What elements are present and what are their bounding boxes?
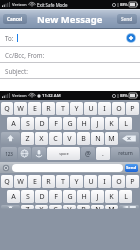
- button[interactable]: Add contact: [126, 33, 136, 43]
- button[interactable]: Q: [1, 102, 13, 115]
- staticText: D: [39, 119, 45, 129]
- button[interactable]: L: [119, 117, 132, 130]
- staticText: O: [116, 177, 122, 187]
- staticText: C: [53, 205, 58, 209]
- button[interactable]: G: [63, 190, 76, 203]
- staticText: Cancel: [7, 16, 23, 22]
- button[interactable]: Subject:: [0, 63, 140, 79]
- staticText: 88%: [120, 2, 128, 7]
- button[interactable]: Camera: [2, 164, 10, 172]
- staticText: X: [39, 134, 44, 144]
- button[interactable]: E: [28, 175, 41, 188]
- button[interactable]: P: [126, 102, 139, 115]
- button[interactable]: To:: [0, 29, 140, 47]
- staticText: V: [67, 134, 72, 144]
- button[interactable]: R: [42, 102, 55, 115]
- staticText: O: [116, 104, 122, 114]
- staticText: Verizon: [12, 2, 27, 8]
- button[interactable]: V: [63, 132, 76, 145]
- button[interactable]: Dictate: [32, 147, 46, 160]
- button[interactable]: M: [105, 132, 118, 145]
- staticText: Z: [25, 134, 30, 144]
- button[interactable]: Z: [21, 132, 34, 145]
- button[interactable]: T: [56, 102, 69, 115]
- button[interactable]: U: [84, 102, 97, 115]
- staticText: Y: [74, 104, 79, 114]
- button[interactable]: J: [91, 190, 104, 203]
- button[interactable]: N: [91, 132, 104, 145]
- button[interactable]: Send: [117, 14, 137, 24]
- button[interactable]: D: [35, 190, 48, 203]
- button[interactable]: G: [63, 117, 76, 130]
- button[interactable]: H: [77, 117, 90, 130]
- staticText: Verizon: [12, 93, 27, 99]
- staticText: M: [108, 205, 115, 209]
- button[interactable]: 123: [1, 147, 17, 160]
- button[interactable]: Z: [21, 205, 34, 209]
- button[interactable]: Cancel: [3, 14, 27, 24]
- button[interactable]: S: [21, 190, 34, 203]
- button[interactable]: Shift: [1, 132, 20, 145]
- staticText: B: [81, 205, 86, 209]
- button[interactable]: H: [77, 190, 90, 203]
- staticText: F: [54, 119, 58, 129]
- button[interactable]: C: [49, 132, 62, 145]
- button[interactable]: F: [49, 190, 62, 203]
- button[interactable]: I: [98, 102, 111, 115]
- button[interactable]: Send: [125, 164, 138, 172]
- button[interactable]: A: [7, 190, 20, 203]
- button[interactable]: Backspace: [119, 132, 139, 145]
- staticText: X: [39, 205, 44, 209]
- staticText: Cc/Bcc, From:: [5, 51, 45, 59]
- staticText: Send: [126, 165, 137, 171]
- button[interactable]: K: [105, 190, 118, 203]
- staticText: space: [59, 151, 69, 156]
- button[interactable]: J: [91, 117, 104, 130]
- button[interactable]: X: [35, 132, 48, 145]
- button[interactable]: V: [63, 205, 76, 209]
- button[interactable]: return: [111, 147, 139, 160]
- button[interactable]: I: [98, 175, 111, 188]
- button[interactable]: .: [96, 147, 110, 160]
- staticText: Y: [74, 177, 79, 187]
- staticText: Q: [4, 104, 10, 114]
- button[interactable]: C: [49, 205, 62, 209]
- button[interactable]: Globe: [18, 147, 31, 160]
- button[interactable]: B: [77, 132, 90, 145]
- button[interactable]: D: [35, 117, 48, 130]
- staticText: return: [118, 150, 133, 157]
- button[interactable]: Shift: [1, 205, 20, 209]
- button[interactable]: K: [105, 117, 118, 130]
- button[interactable]: Y: [70, 102, 83, 115]
- staticText: 123: [5, 151, 13, 157]
- button[interactable]: Q: [1, 175, 13, 188]
- button[interactable]: P: [126, 175, 139, 188]
- button[interactable]: W: [14, 175, 27, 188]
- button[interactable]: [12, 164, 123, 172]
- button[interactable]: L: [119, 190, 132, 203]
- button[interactable]: space: [47, 147, 80, 160]
- button[interactable]: S: [21, 117, 34, 130]
- button[interactable]: @: [81, 147, 95, 160]
- button[interactable]: W: [14, 102, 27, 115]
- button[interactable]: O: [112, 175, 125, 188]
- button[interactable]: Y: [70, 175, 83, 188]
- staticText: W: [17, 104, 24, 114]
- button[interactable]: B: [77, 205, 90, 209]
- button[interactable]: X: [35, 205, 48, 209]
- staticText: C: [53, 134, 58, 144]
- button[interactable]: U: [84, 175, 97, 188]
- staticText: 88%: [120, 93, 128, 98]
- button[interactable]: E: [28, 102, 41, 115]
- staticText: S: [26, 119, 30, 129]
- staticText: I: [103, 177, 106, 187]
- button[interactable]: M: [105, 205, 118, 209]
- button[interactable]: F: [49, 117, 62, 130]
- button[interactable]: R: [42, 175, 55, 188]
- button[interactable]: N: [91, 205, 104, 209]
- button[interactable]: O: [112, 102, 125, 115]
- button[interactable]: Cc/Bcc, From:: [0, 47, 140, 63]
- button[interactable]: A: [7, 117, 20, 130]
- button[interactable]: T: [56, 175, 69, 188]
- button[interactable]: Backspace: [119, 205, 139, 209]
